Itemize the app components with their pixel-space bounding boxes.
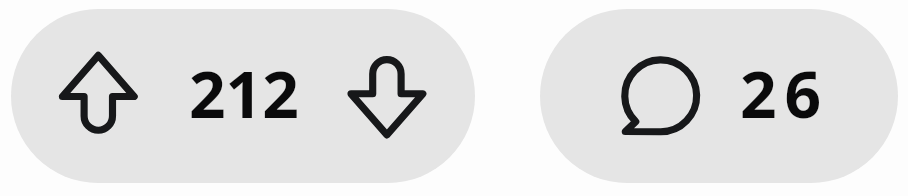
button[interactable]: Comments (540, 9, 898, 183)
staticText: 26 (740, 50, 830, 137)
staticText: 212 (189, 50, 299, 137)
button[interactable]: Upvote (11, 9, 181, 183)
button[interactable]: Downvote (305, 9, 475, 183)
